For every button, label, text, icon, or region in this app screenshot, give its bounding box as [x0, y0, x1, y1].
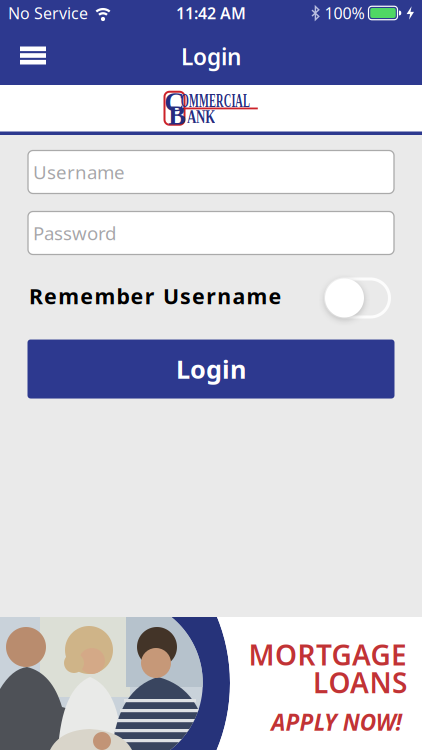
- staticText: 11:42 AM: [176, 2, 246, 24]
- staticText: Remember Username: [29, 282, 282, 310]
- staticText: 100%: [324, 2, 364, 24]
- staticText: OMMERCIAL: [152, 90, 278, 111]
- staticText: B: [168, 101, 186, 130]
- staticText: Password: [33, 221, 116, 245]
- staticText: ANK: [181, 107, 221, 127]
- staticText: Username: [33, 160, 125, 184]
- button[interactable]: Mortgage Loans — Apply Now: [0, 617, 422, 750]
- button[interactable]: Remember Username: [324, 277, 391, 318]
- staticText: Login: [181, 41, 241, 71]
- staticText: MORTGAGE: [248, 636, 407, 673]
- button[interactable]: Login: [27, 339, 394, 398]
- staticText: No Service: [8, 2, 88, 24]
- staticText: APPLY NOW!: [263, 706, 402, 737]
- staticText: C: [164, 86, 184, 117]
- staticText: Login: [176, 352, 246, 386]
- button[interactable]: Menu: [0, 26, 58, 85]
- staticText: LOANS: [313, 664, 407, 701]
